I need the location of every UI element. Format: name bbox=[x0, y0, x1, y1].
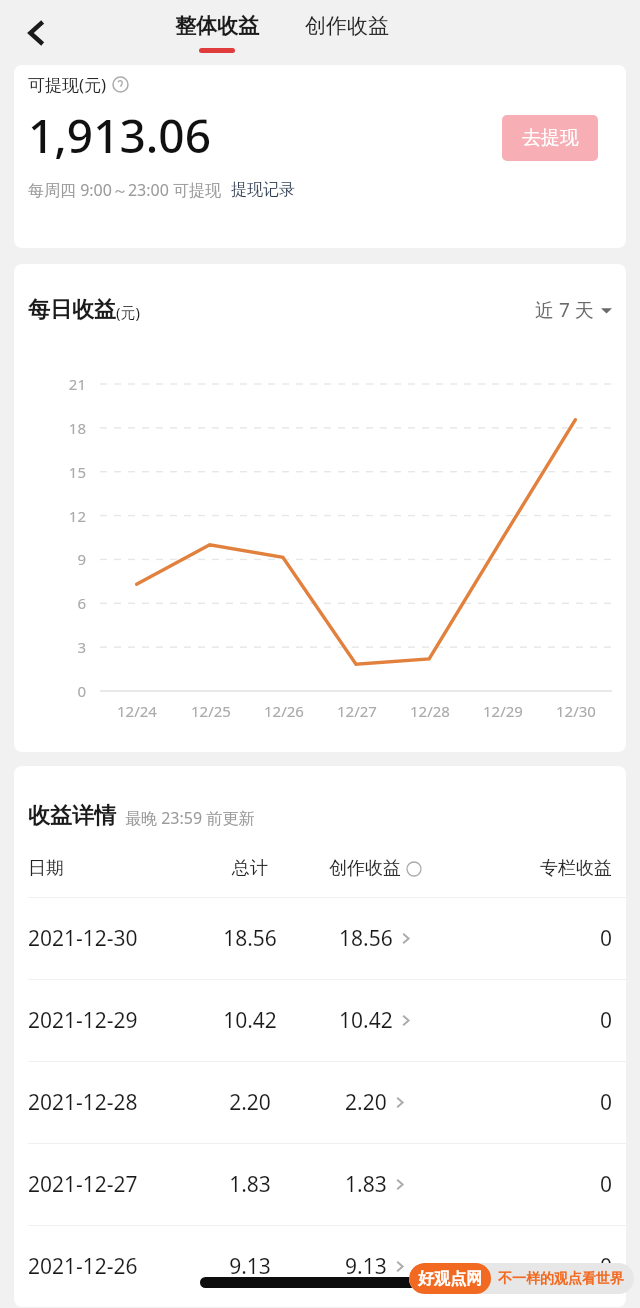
button[interactable]: 2021-12-30 bbox=[14, 898, 626, 979]
staticText: 9.13 bbox=[196, 1252, 304, 1281]
staticText: 0 bbox=[446, 924, 612, 953]
staticText: 21 bbox=[14, 374, 86, 394]
staticText: 2021-12-28 bbox=[28, 1088, 196, 1117]
staticText: 2.20 bbox=[345, 1088, 387, 1117]
staticText: 15 bbox=[14, 462, 86, 482]
staticText: 12/25 bbox=[191, 701, 231, 721]
staticText: 2021-12-30 bbox=[28, 924, 196, 953]
staticText: 日期 bbox=[28, 857, 196, 880]
staticText: 3 bbox=[14, 637, 86, 657]
staticText: (元) bbox=[116, 302, 141, 322]
button[interactable]: 提现记录 bbox=[231, 180, 295, 200]
staticText: 0 bbox=[14, 681, 86, 701]
staticText: 可提现(元) bbox=[28, 73, 107, 96]
staticText: 去提现 bbox=[522, 126, 579, 150]
staticText: 收益详情 bbox=[28, 802, 116, 830]
staticText: 12/27 bbox=[337, 701, 377, 721]
staticText: 6 bbox=[14, 593, 86, 613]
staticText: 18.56 bbox=[196, 924, 304, 953]
button[interactable]: Back bbox=[8, 5, 64, 61]
staticText: 12/26 bbox=[264, 701, 304, 721]
staticText: 12 bbox=[14, 506, 86, 526]
staticText: 总计 bbox=[196, 857, 304, 880]
staticText: 0 bbox=[446, 1170, 612, 1199]
staticText: 不一样的观点看世界 bbox=[498, 1270, 624, 1288]
staticText: 10.42 bbox=[339, 1006, 393, 1035]
staticText: 18.56 bbox=[339, 924, 393, 953]
staticText: 2021-12-26 bbox=[28, 1252, 196, 1281]
staticText: 2021-12-27 bbox=[28, 1170, 196, 1199]
staticText: 12/28 bbox=[410, 701, 450, 721]
staticText: 1.83 bbox=[196, 1170, 304, 1199]
button[interactable]: 近 7 天 bbox=[535, 297, 612, 324]
staticText: 2021-12-29 bbox=[28, 1006, 196, 1035]
button[interactable]: 2021-12-28 bbox=[14, 1062, 626, 1143]
staticText: 12/29 bbox=[483, 701, 523, 721]
staticText: 最晚 23:59 前更新 bbox=[125, 807, 255, 829]
button[interactable]: 整体收益 bbox=[175, 13, 259, 53]
button[interactable]: 去提现 bbox=[502, 115, 598, 161]
staticText: 0 bbox=[446, 1252, 612, 1281]
button[interactable]: 2021-12-27 bbox=[14, 1144, 626, 1225]
button[interactable]: 创作收益 bbox=[305, 13, 389, 53]
staticText: 每日收益 bbox=[28, 296, 116, 324]
staticText: 2.20 bbox=[196, 1088, 304, 1117]
staticText: 每周四 9:00～23:00 可提现 bbox=[28, 179, 221, 201]
staticText: 12/24 bbox=[117, 701, 157, 721]
staticText: 近 7 天 bbox=[535, 297, 594, 323]
staticText: 创作收益 bbox=[329, 857, 401, 880]
staticText: 整体收益 bbox=[175, 13, 259, 39]
staticText: 1,913.06 bbox=[28, 104, 211, 167]
button[interactable]: 2021-12-29 bbox=[14, 980, 626, 1061]
staticText: 1.83 bbox=[345, 1170, 387, 1199]
staticText: 18 bbox=[14, 418, 86, 438]
staticText: 9 bbox=[14, 549, 86, 569]
staticText: 0 bbox=[446, 1006, 612, 1035]
staticText: 创作收益 bbox=[305, 13, 389, 39]
button[interactable]: 2021-12-26 bbox=[14, 1226, 626, 1307]
staticText: 9.13 bbox=[345, 1252, 387, 1281]
staticText: 10.42 bbox=[196, 1006, 304, 1035]
staticText: 专栏收益 bbox=[446, 857, 612, 880]
staticText: 好观点网 bbox=[418, 1269, 482, 1289]
staticText: 0 bbox=[446, 1088, 612, 1117]
staticText: 提现记录 bbox=[231, 180, 295, 200]
staticText: 12/30 bbox=[556, 701, 596, 721]
